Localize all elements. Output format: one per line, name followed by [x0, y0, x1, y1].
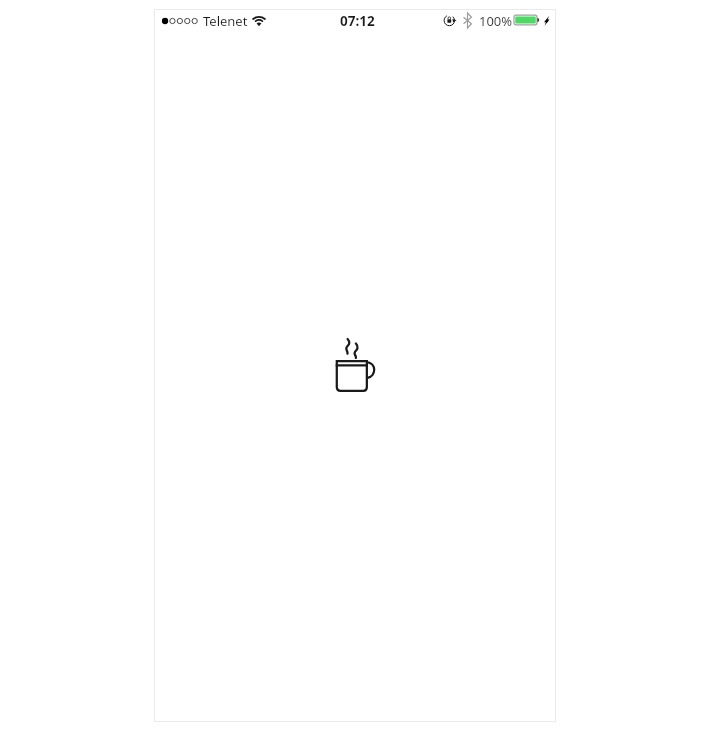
button[interactable]: Coffee [335, 337, 375, 392]
staticText: 100% [479, 12, 513, 30]
staticText: Telenet [203, 12, 248, 30]
staticText: 07:12 [340, 12, 375, 30]
